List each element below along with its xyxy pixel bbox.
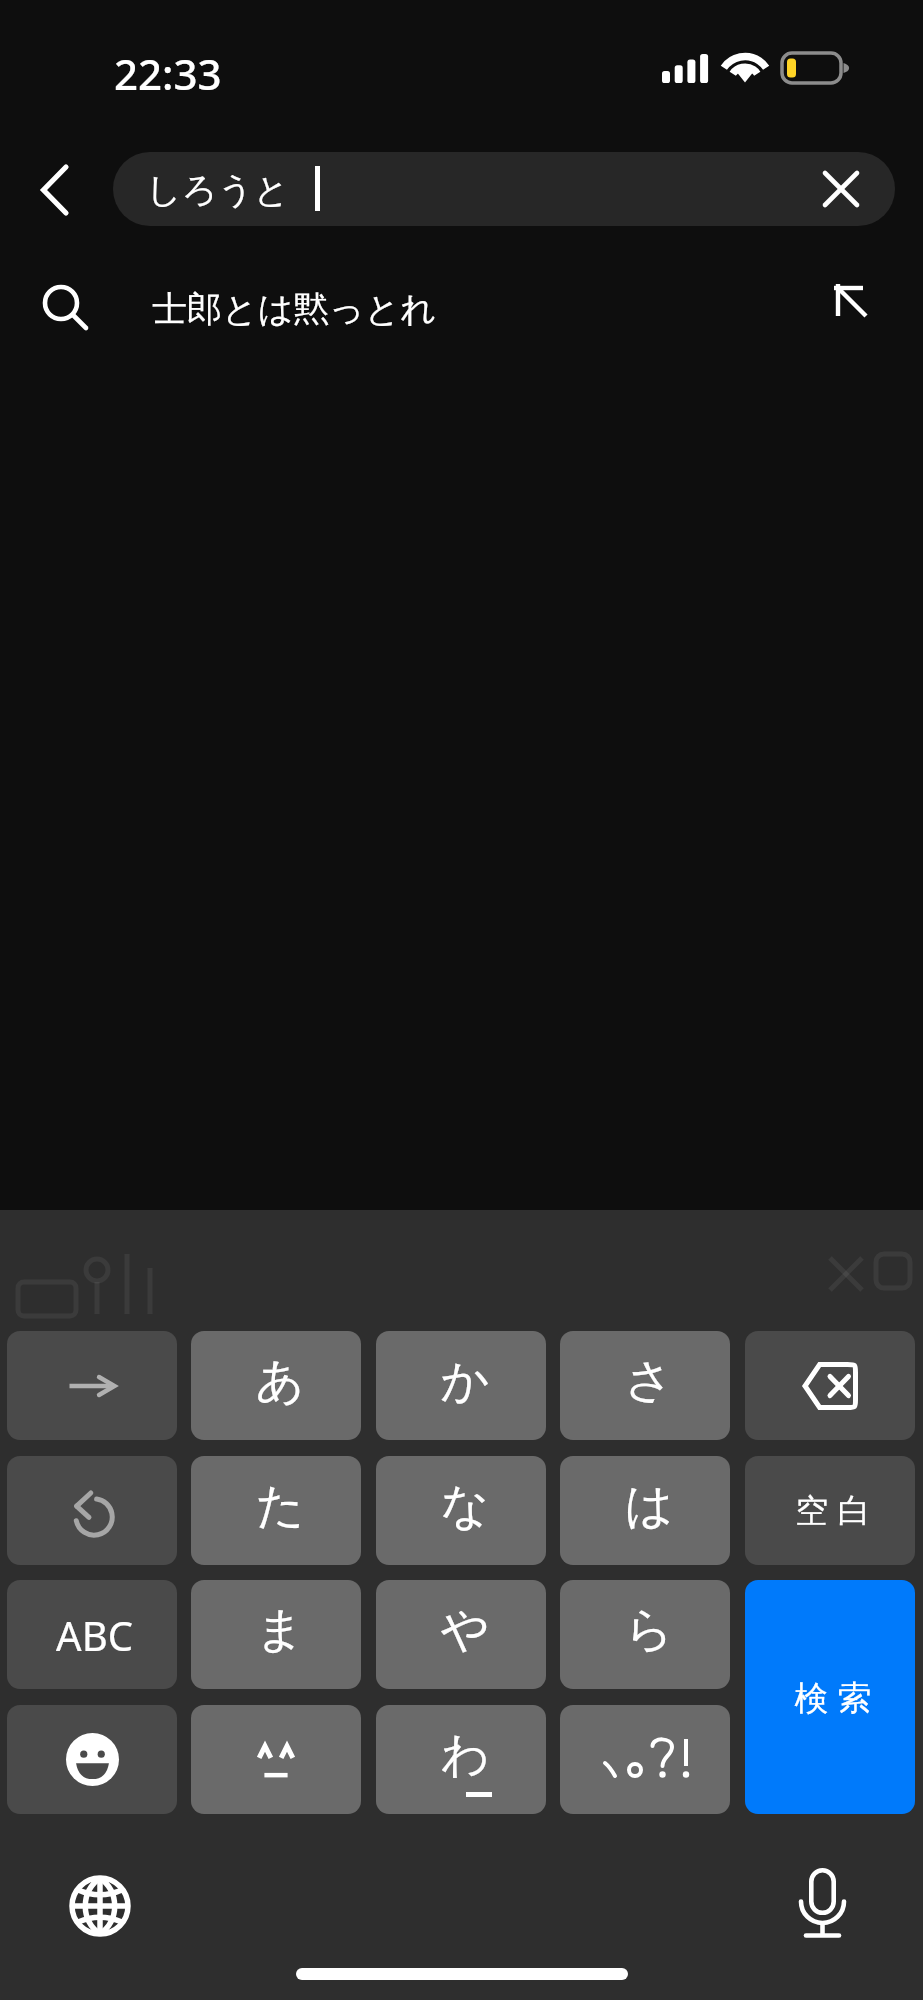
staticText: さ bbox=[624, 1351, 674, 1411]
button[interactable]: わ bbox=[376, 1705, 546, 1814]
button[interactable]: Move cursor right bbox=[7, 1331, 177, 1440]
staticText: わ bbox=[440, 1725, 490, 1785]
button[interactable]: や bbox=[376, 1580, 546, 1689]
staticText: ま bbox=[255, 1600, 305, 1660]
staticText: や bbox=[440, 1600, 490, 1660]
button[interactable]: 空白 bbox=[745, 1456, 915, 1565]
button[interactable]: な bbox=[376, 1456, 546, 1565]
button[interactable]: あ bbox=[191, 1331, 361, 1440]
button[interactable]: しろうと bbox=[113, 152, 895, 226]
button[interactable]: Backspace bbox=[745, 1331, 915, 1440]
button[interactable]: か bbox=[376, 1331, 546, 1440]
button[interactable]: ら bbox=[560, 1580, 730, 1689]
button[interactable]: Undo bbox=[7, 1456, 177, 1565]
button[interactable]: Back bbox=[0, 152, 113, 226]
staticText: ら bbox=[624, 1600, 674, 1660]
button[interactable]: さ bbox=[560, 1331, 730, 1440]
staticText: 空白 bbox=[791, 1490, 875, 1532]
button[interactable] bbox=[191, 1705, 361, 1814]
staticText: 検索 bbox=[790, 1677, 876, 1720]
button[interactable]: 士郎とは黙っとれ bbox=[0, 252, 923, 362]
button[interactable]: Dictation bbox=[790, 1866, 860, 1946]
button[interactable]: Next keyboard bbox=[69, 1875, 131, 1937]
staticText: しろうと bbox=[146, 168, 290, 212]
button[interactable]: ま bbox=[191, 1580, 361, 1689]
button[interactable]: Use suggestion bbox=[805, 256, 867, 318]
button[interactable]: 検索 bbox=[745, 1580, 915, 1814]
button[interactable] bbox=[560, 1705, 730, 1814]
button[interactable]: た bbox=[191, 1456, 361, 1565]
staticText: 士郎とは黙っとれ bbox=[152, 287, 437, 331]
staticText: 22:33 bbox=[114, 45, 222, 102]
staticText: ABC bbox=[56, 1608, 133, 1662]
button[interactable]: Clear text bbox=[813, 161, 869, 217]
button[interactable]: Emoji bbox=[7, 1705, 177, 1814]
staticText: か bbox=[440, 1351, 490, 1411]
button[interactable]: は bbox=[560, 1456, 730, 1565]
staticText: な bbox=[440, 1476, 490, 1536]
button[interactable]: ABC bbox=[7, 1580, 177, 1689]
staticText: た bbox=[255, 1476, 305, 1536]
staticText: は bbox=[624, 1476, 674, 1536]
staticText: あ bbox=[255, 1351, 305, 1411]
